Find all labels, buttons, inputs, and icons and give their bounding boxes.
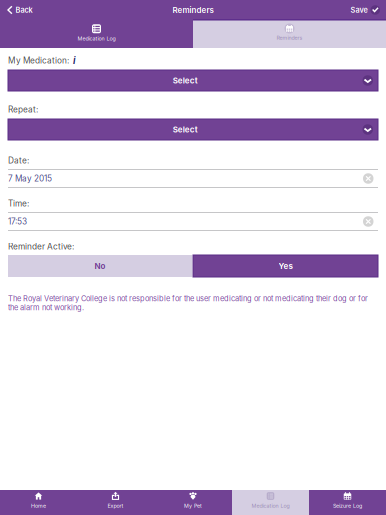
- button[interactable]: Medication Log: [232, 490, 309, 515]
- staticText: My Medication:: [8, 55, 69, 65]
- button[interactable]: My Pet: [154, 490, 232, 515]
- button[interactable]: Back: [0, 0, 38, 20]
- button[interactable]: Seizure Log: [309, 490, 386, 515]
- staticText: Date:: [8, 155, 29, 165]
- staticText: Home: [31, 502, 46, 509]
- staticText: Export: [107, 502, 123, 509]
- staticText: Time:: [8, 198, 29, 208]
- staticText: 17:53: [8, 216, 27, 226]
- button[interactable]: Home: [0, 490, 77, 515]
- button[interactable]: Select: [0, 70, 386, 91]
- staticText: The Royal Veterinary College is not resp…: [8, 294, 368, 312]
- staticText: Yes: [278, 261, 292, 271]
- staticText: Repeat:: [8, 104, 38, 114]
- staticText: Medication Log: [77, 35, 115, 42]
- button[interactable]: No: [8, 255, 192, 277]
- button[interactable]: Medication Log: [0, 20, 193, 48]
- button[interactable]: 7 May 2015: [8, 170, 378, 187]
- button[interactable]: Export: [77, 490, 154, 515]
- button[interactable]: Reminders: [193, 20, 386, 48]
- staticText: Select: [173, 125, 198, 134]
- staticText: Medication Log: [251, 502, 289, 509]
- staticText: Reminders: [276, 34, 302, 41]
- staticText: Reminders: [172, 5, 213, 15]
- staticText: No: [94, 261, 105, 271]
- button[interactable]: Yes: [193, 255, 378, 277]
- staticText: My Pet: [184, 502, 202, 509]
- button[interactable]: Select: [0, 119, 386, 140]
- staticText: Select: [173, 76, 198, 85]
- staticText: Save: [350, 6, 367, 14]
- staticText: Seizure Log: [333, 502, 362, 509]
- button[interactable]: 17:53: [8, 213, 378, 230]
- button[interactable]: Save: [344, 0, 386, 20]
- staticText: i: [73, 55, 76, 66]
- staticText: Back: [15, 6, 32, 14]
- staticText: Reminder Active:: [8, 241, 74, 251]
- staticText: 7 May 2015: [8, 173, 52, 183]
